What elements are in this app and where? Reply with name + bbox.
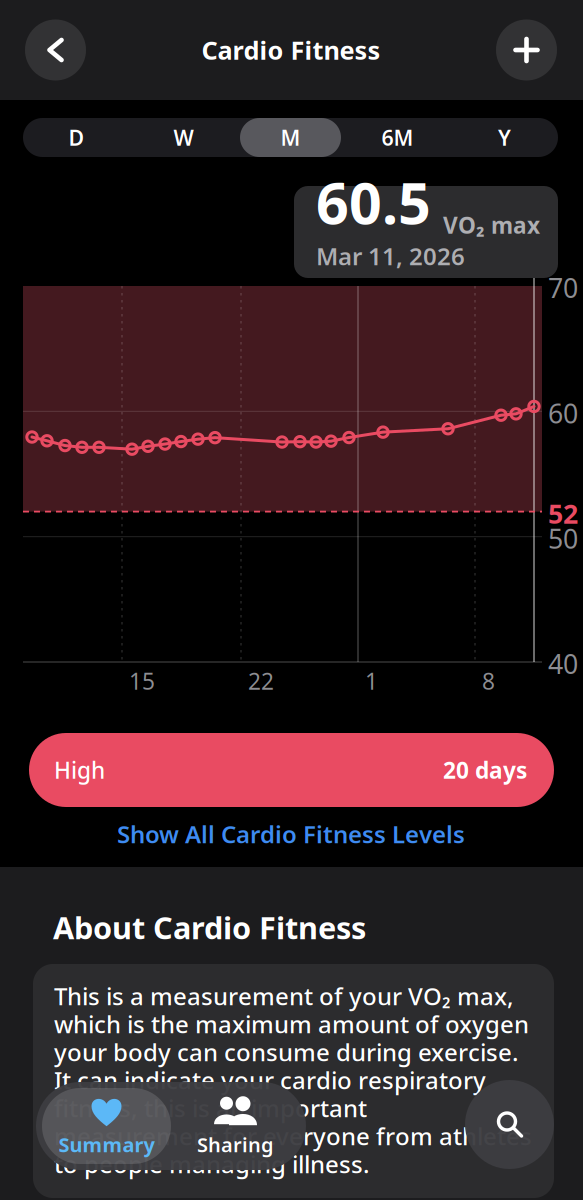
staticText: 70 (548, 270, 578, 305)
button[interactable]: Show All Cardio Fitness Levels (117, 818, 497, 850)
staticText: M (280, 123, 300, 152)
staticText: 8 (482, 666, 495, 696)
button[interactable]: Y (451, 118, 558, 157)
staticText: Show All Cardio Fitness Levels (117, 818, 465, 850)
staticText: measurement for everyone from athletes (54, 1120, 532, 1152)
staticText: It can indicate your cardio respiratory (54, 1064, 486, 1096)
staticText: 60 (548, 395, 578, 431)
staticText: Y (498, 123, 511, 152)
staticText: 20 days (443, 755, 527, 785)
staticText: 1 (365, 666, 378, 696)
button[interactable]: W (130, 118, 237, 157)
staticText: 52 (548, 496, 578, 531)
button[interactable]: Sharing (171, 1088, 300, 1164)
button[interactable]: Add (496, 19, 557, 80)
staticText: Sharing (197, 1131, 274, 1158)
button[interactable]: Summary (42, 1088, 171, 1164)
staticText: 22 (248, 666, 274, 696)
staticText: Summary (58, 1131, 154, 1158)
staticText: About Cardio Fitness (53, 907, 366, 948)
button[interactable]: M (237, 118, 344, 157)
staticText: 60.5 (316, 164, 431, 240)
staticText: 40 (548, 646, 578, 681)
staticText: D (68, 123, 84, 152)
staticText: High (54, 755, 105, 785)
staticText: W (173, 123, 193, 152)
button[interactable]: 6M (344, 118, 451, 157)
staticText: Mar 11, 2026 (316, 240, 465, 272)
staticText: fitness, this is an important (54, 1092, 367, 1124)
staticText: your body can consume during exercise. (54, 1036, 519, 1068)
staticText: to people managing illness. (54, 1148, 370, 1180)
staticText: Cardio Fitness (201, 33, 380, 67)
button[interactable]: Search (465, 1080, 554, 1169)
staticText: which is the maximum amount of oxygen (54, 1008, 529, 1040)
staticText: 50 (548, 521, 578, 556)
staticText: 15 (129, 666, 155, 696)
button[interactable]: D (23, 118, 130, 157)
staticText: 6M (381, 123, 413, 152)
staticText: VO₂ max (443, 210, 540, 240)
staticText: This is a measurement of your VO₂ max, (54, 980, 514, 1012)
button[interactable]: High (29, 733, 554, 807)
button[interactable]: Back (25, 19, 86, 80)
